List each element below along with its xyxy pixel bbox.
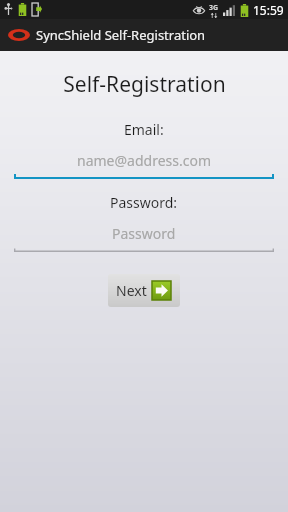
button[interactable]: Next xyxy=(108,274,180,307)
button[interactable]: Email field xyxy=(14,151,274,179)
staticText: Password: xyxy=(110,193,178,212)
button[interactable]: Password field xyxy=(14,224,274,252)
staticText: Email: xyxy=(124,120,164,139)
staticText: 3G xyxy=(209,3,219,13)
staticText: Password xyxy=(112,224,176,243)
staticText: SyncShield Self-Registration xyxy=(36,26,206,44)
staticText: 15:59 xyxy=(253,2,284,18)
staticText: Next xyxy=(116,281,147,300)
staticText: Self-Registration xyxy=(63,70,226,99)
staticText: name@address.com xyxy=(77,151,211,170)
